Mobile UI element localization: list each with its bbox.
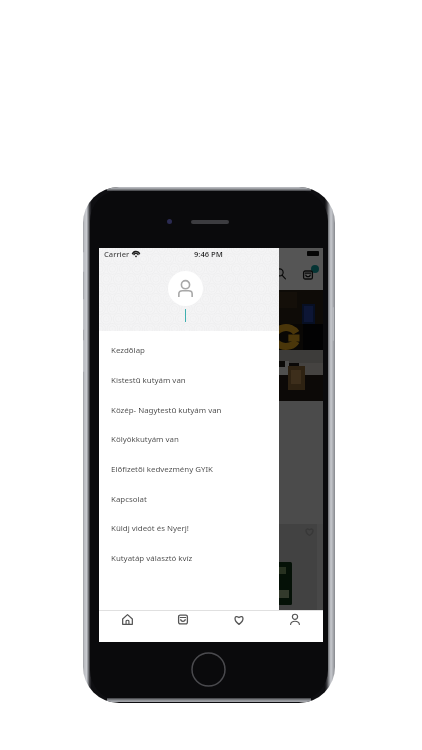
button[interactable]: Küldj videót és Nyerj! xyxy=(99,513,279,543)
button[interactable]: Kölyökkutyám van xyxy=(99,424,279,454)
button[interactable]: Shop xyxy=(155,611,211,642)
button[interactable]: Kapcsolat xyxy=(99,484,279,514)
staticText: Carrier xyxy=(104,249,130,259)
button[interactable]: Előfizetői kedvezmény GYIK xyxy=(99,454,279,484)
staticText: Előfizetői kedvezmény GYIK xyxy=(111,464,213,475)
staticText: Küldj videót és Nyerj! xyxy=(111,523,189,534)
staticText: 9:46 PM xyxy=(194,249,223,259)
button[interactable]: Profile xyxy=(267,611,323,642)
button[interactable]: Home button xyxy=(191,652,226,687)
button[interactable]: Favourites xyxy=(211,611,267,642)
button[interactable]: Közép- Nagytestű kutyám van xyxy=(99,395,279,425)
staticText: Kapcsolat xyxy=(111,494,147,505)
staticText: Kutyatáp választó kvíz xyxy=(111,553,193,564)
button[interactable]: Home xyxy=(99,611,155,642)
staticText: Közép- Nagytestű kutyám van xyxy=(111,405,222,416)
button[interactable]: Cart xyxy=(298,265,317,284)
button[interactable]: Kistestű kutyám van xyxy=(99,365,279,395)
staticText: Kölyökkutyám van xyxy=(111,434,179,445)
button[interactable]: Search xyxy=(271,264,290,283)
button[interactable]: Profile photo xyxy=(168,271,203,306)
staticText: Kezdőlap xyxy=(111,345,145,356)
button[interactable]: Kutyatáp választó kvíz xyxy=(99,543,279,573)
staticText: Kistestű kutyám van xyxy=(111,375,186,386)
button[interactable]: Kezdőlap xyxy=(99,335,279,365)
